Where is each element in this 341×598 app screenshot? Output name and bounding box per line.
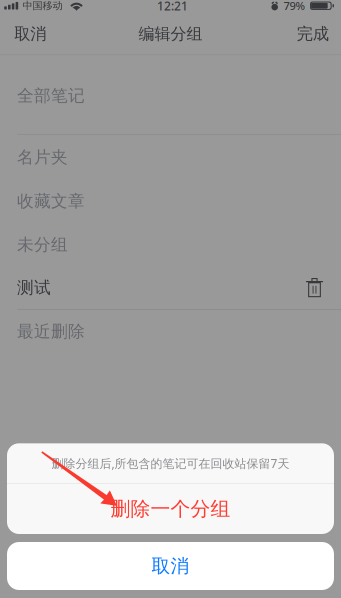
- button[interactable]: 名片夹: [0, 135, 341, 179]
- button[interactable]: 未分组: [0, 223, 341, 266]
- staticText: 未分组: [17, 234, 68, 255]
- staticText: 名片夹: [17, 147, 68, 168]
- staticText: 删除一个分组: [110, 497, 230, 521]
- button[interactable]: 完成: [287, 20, 341, 48]
- button[interactable]: 最近删除: [0, 310, 341, 353]
- button[interactable]: 收藏文章: [0, 179, 341, 223]
- staticText: 收藏文章: [17, 191, 85, 212]
- staticText: 79%: [283, 0, 305, 13]
- staticText: 12:21: [157, 0, 188, 14]
- staticText: 中国移动: [22, 0, 62, 12]
- button[interactable]: 测试: [0, 266, 341, 309]
- button[interactable]: 删除一个分组: [7, 484, 334, 534]
- staticText: 测试: [17, 277, 51, 298]
- staticText: 完成: [297, 24, 329, 44]
- staticText: 最近删除: [17, 321, 85, 342]
- button[interactable]: 取消: [0, 20, 56, 48]
- staticText: 删除分组后,所包含的笔记可在回收站保留7天: [51, 455, 289, 471]
- staticText: 全部笔记: [17, 85, 85, 106]
- button[interactable]: 取消: [7, 542, 334, 590]
- staticText: 取消: [151, 554, 189, 578]
- staticText: 取消: [14, 24, 46, 44]
- button[interactable]: 全部笔记: [0, 74, 341, 117]
- staticText: 编辑分组: [138, 24, 202, 44]
